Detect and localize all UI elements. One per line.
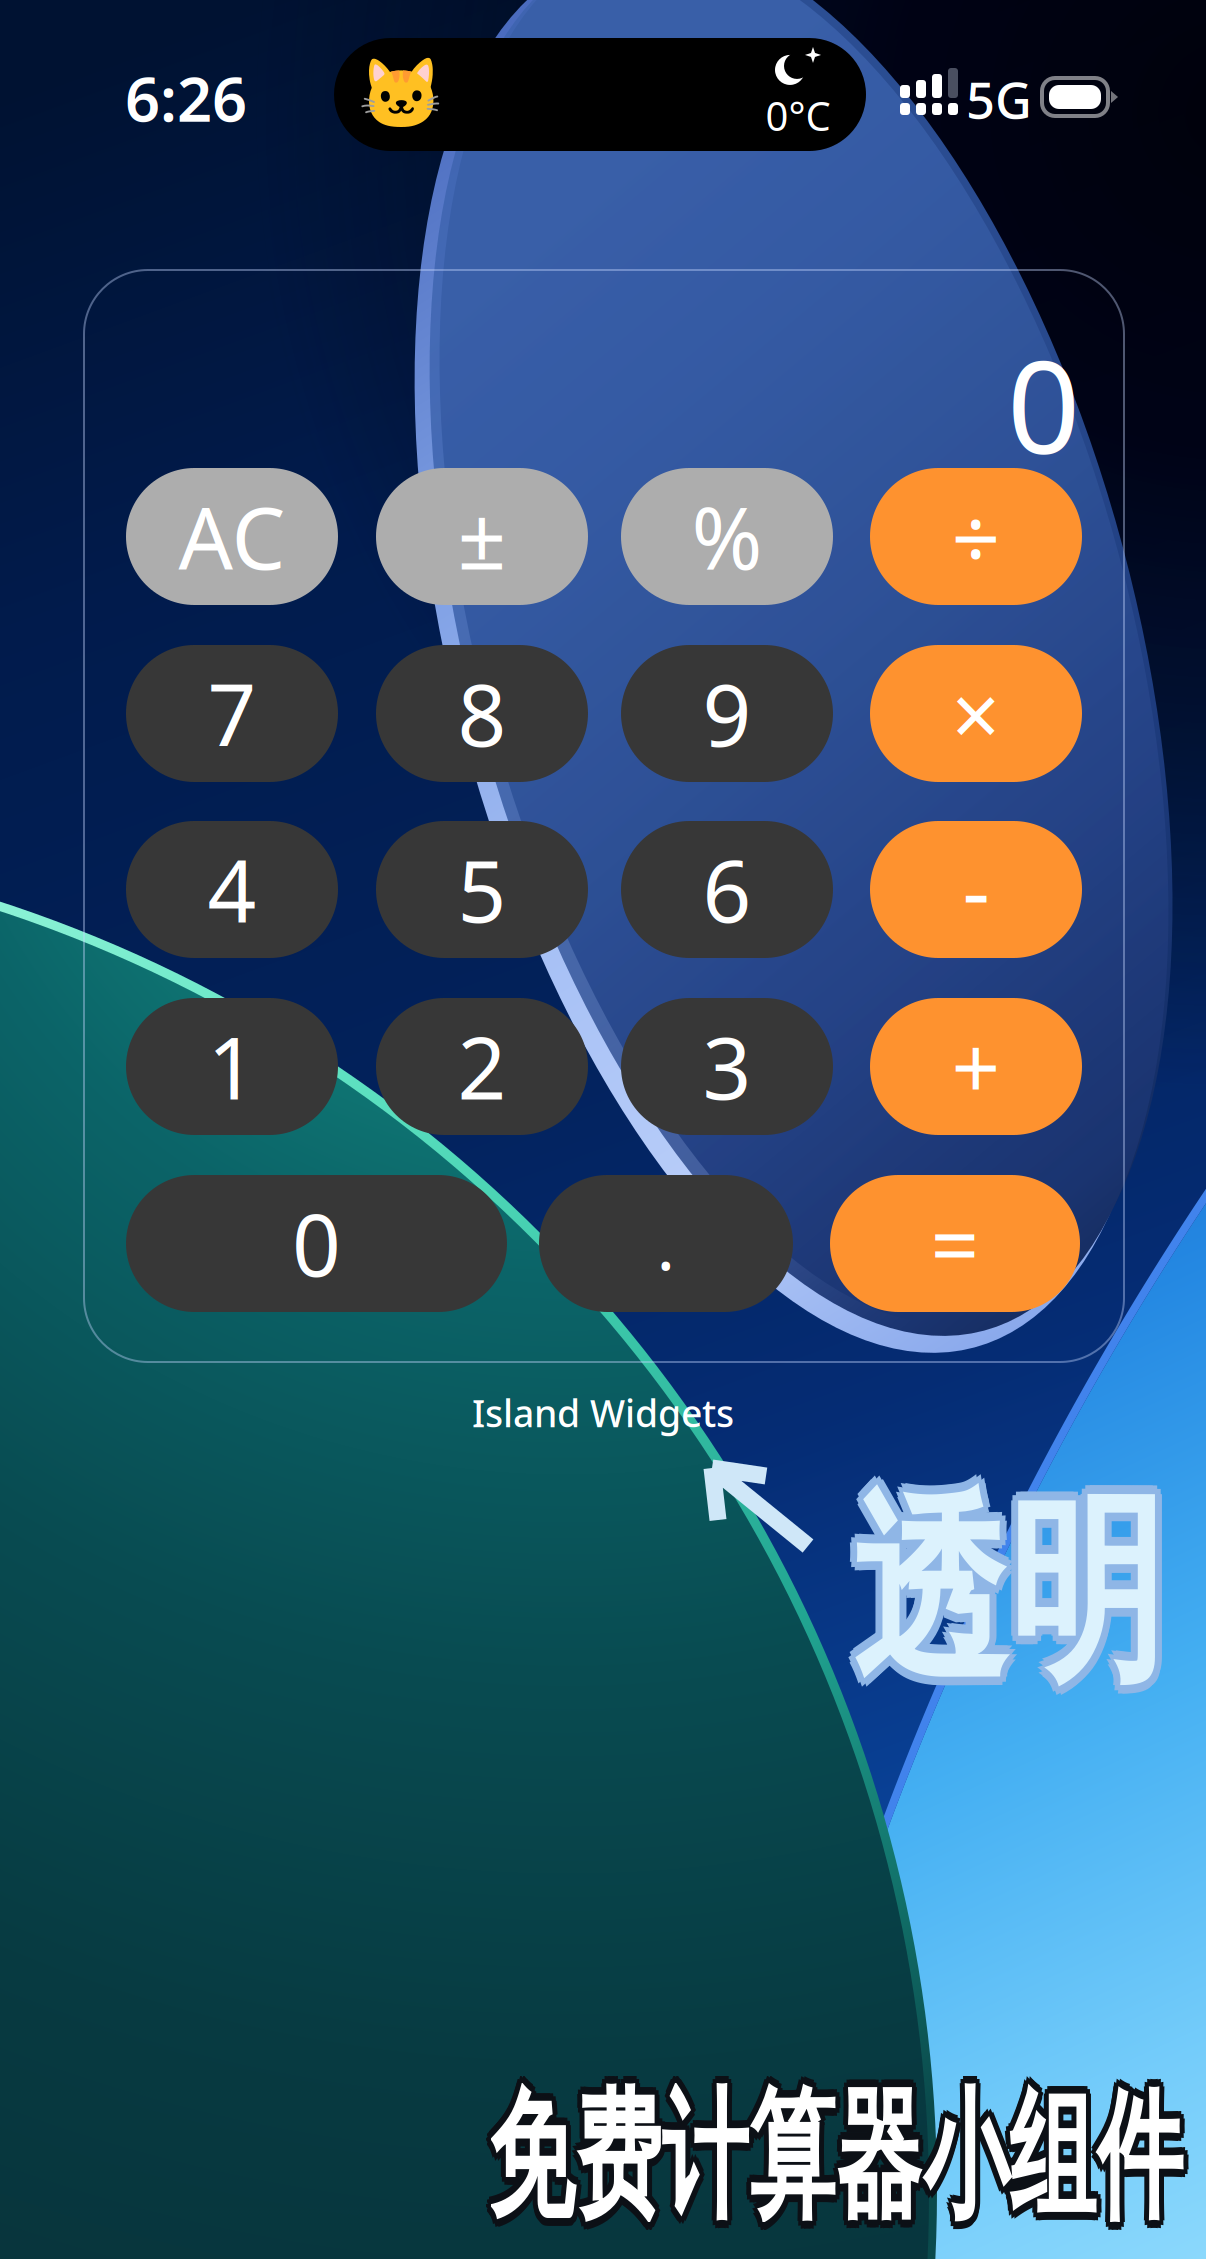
staticText: 0 (292, 1187, 341, 1300)
staticText: 0 (1007, 319, 1080, 489)
staticText: 2 (457, 1010, 506, 1123)
button[interactable]: AC (126, 468, 338, 605)
staticText: 免费计算器小组件 (485, 2064, 1206, 2235)
staticText: 透明 (843, 1470, 1206, 1716)
staticText: 免费计算器小组件 (485, 2080, 1206, 2250)
staticText: 免费计算器小组件 (494, 2077, 1206, 2247)
staticText: 6 (702, 833, 751, 946)
button[interactable]: ± (376, 468, 588, 605)
staticText: 免费计算器小组件 (496, 2072, 1206, 2242)
staticText: 透明 (861, 1470, 1206, 1716)
staticText: . (656, 1197, 675, 1290)
staticText: 透明 (855, 1461, 1206, 1707)
staticText: 透明 (849, 1479, 1206, 1724)
staticText: 免费计算器小组件 (490, 2080, 1206, 2250)
button[interactable]: 8 (376, 645, 588, 782)
staticText: 7 (207, 657, 256, 770)
staticText: 1 (207, 1010, 256, 1123)
staticText: 9 (702, 657, 751, 770)
staticText: 5 (457, 833, 506, 946)
button[interactable]: 1 (126, 998, 338, 1135)
staticText: 透明 (859, 1475, 1206, 1721)
button[interactable]: 3 (621, 998, 833, 1135)
staticText: 4 (207, 833, 256, 946)
staticText: × (951, 657, 1000, 770)
staticText: 免费计算器小组件 (481, 2077, 1206, 2247)
staticText: 透明 (859, 1465, 1206, 1710)
button[interactable]: - (870, 821, 1082, 958)
staticText: 🐱 (358, 55, 444, 134)
staticText: 5G (966, 65, 1032, 133)
staticText: 透明 (845, 1465, 1206, 1710)
staticText: 免费计算器小组件 (494, 2067, 1206, 2238)
staticText: ± (457, 480, 506, 593)
staticText: = (930, 1187, 979, 1300)
staticText: % (691, 480, 762, 593)
staticText: - (962, 833, 989, 946)
staticText: 6:26 (125, 57, 247, 139)
staticText: 免费计算器小组件 (490, 2064, 1206, 2235)
staticText: + (951, 1010, 1000, 1123)
staticText: ÷ (951, 480, 1000, 593)
staticText: 3 (702, 1010, 751, 1123)
button[interactable]: + (870, 998, 1082, 1135)
button[interactable]: × (870, 645, 1082, 782)
button[interactable]: 4 (126, 821, 338, 958)
staticText: 透明 (849, 1461, 1206, 1707)
staticText: 免费计算器小组件 (480, 2072, 1206, 2242)
button[interactable]: 6 (621, 821, 833, 958)
staticText: AC (178, 480, 285, 593)
staticText: 免费计算器小组件 (481, 2067, 1206, 2238)
staticText: Island Widgets (472, 1388, 734, 1438)
button[interactable]: . (539, 1175, 793, 1312)
button[interactable]: 5 (376, 821, 588, 958)
button[interactable]: 2 (376, 998, 588, 1135)
staticText: 0°C (765, 89, 830, 142)
staticText: 透明 (845, 1475, 1206, 1721)
staticText: 8 (457, 657, 506, 770)
button[interactable]: 9 (621, 645, 833, 782)
staticText: 透明 (852, 1470, 1206, 1716)
button[interactable]: = (830, 1175, 1080, 1312)
staticText: 免费计算器小组件 (488, 2072, 1206, 2242)
button[interactable]: ÷ (870, 468, 1082, 605)
staticText: 透明 (855, 1479, 1206, 1724)
button[interactable]: 7 (126, 645, 338, 782)
button[interactable]: 0 (126, 1175, 507, 1312)
button[interactable]: % (621, 468, 833, 605)
